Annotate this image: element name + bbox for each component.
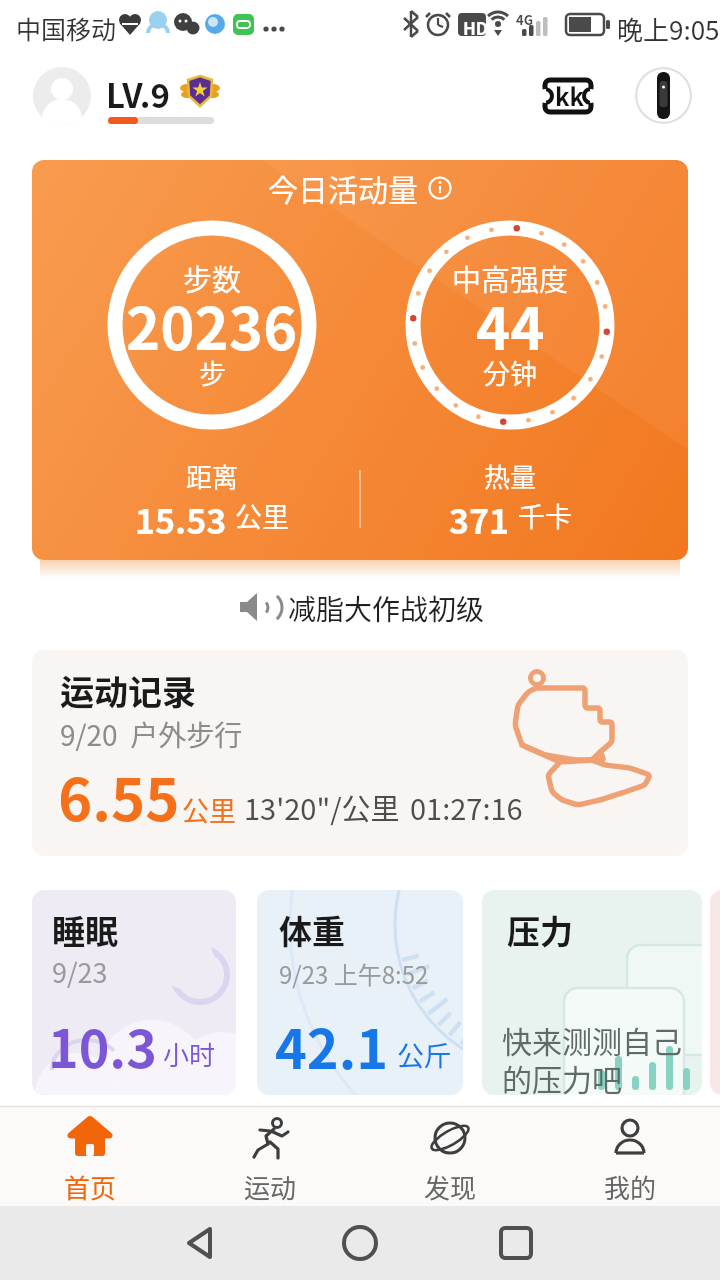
- staticText: 我的: [604, 1168, 657, 1206]
- staticText: 9/23 上午8:52: [279, 956, 429, 991]
- staticText: HD: [463, 15, 489, 40]
- staticText: kk: [555, 78, 584, 113]
- staticText: 热量: [484, 457, 537, 495]
- staticText: 小时: [163, 1035, 216, 1073]
- staticText: 的压力吧: [502, 1056, 622, 1095]
- staticText: 6.55: [58, 754, 180, 838]
- staticText: 44: [476, 283, 545, 367]
- button[interactable]: 体重: [257, 890, 463, 1095]
- staticText: 9/23: [52, 952, 108, 991]
- staticText: 01:27:16: [410, 786, 523, 828]
- staticText: 公斤: [397, 1035, 451, 1074]
- staticText: 4G: [516, 10, 533, 29]
- staticText: 发现: [424, 1168, 477, 1206]
- staticText: 压力: [507, 906, 573, 954]
- staticText: 13'20"/公里: [244, 786, 400, 828]
- staticText: 分钟: [483, 353, 537, 392]
- button[interactable]: 发现: [390, 1116, 510, 1206]
- staticText: 千卡: [518, 496, 572, 535]
- staticText: 步: [199, 353, 226, 392]
- staticText: 371: [449, 495, 510, 537]
- staticText: 快来测测自己: [502, 1018, 682, 1061]
- button[interactable]: 首页: [30, 1116, 150, 1206]
- staticText: 减脂大作战初级: [288, 588, 485, 629]
- button[interactable]: kk: [543, 76, 593, 116]
- button[interactable]: 睡眠: [32, 890, 236, 1095]
- button[interactable]: 今日活动量: [32, 160, 688, 560]
- button[interactable]: 运动记录: [32, 650, 688, 856]
- staticText: 9/20 户外步行: [60, 714, 243, 755]
- staticText: 体重: [279, 906, 345, 954]
- button[interactable]: [635, 67, 692, 124]
- button[interactable]: 压力: [482, 890, 702, 1095]
- staticText: 中国移动: [16, 10, 117, 46]
- staticText: 42.1: [275, 1006, 389, 1084]
- staticText: 10.3: [48, 1008, 157, 1083]
- button[interactable]: 减脂大作战初级: [0, 586, 720, 630]
- button[interactable]: [0, 1206, 720, 1280]
- staticText: LV.9: [106, 70, 171, 118]
- button[interactable]: 运动: [210, 1116, 330, 1206]
- staticText: 晚上9:05: [617, 10, 720, 48]
- staticText: 20236: [126, 283, 298, 367]
- staticText: 首页: [64, 1168, 117, 1206]
- button[interactable]: [33, 67, 91, 125]
- staticText: 运动记录: [60, 666, 196, 715]
- staticText: 今日活动量: [268, 166, 418, 209]
- staticText: 公里: [182, 790, 236, 829]
- staticText: 公里: [235, 496, 289, 535]
- staticText: 中高强度: [452, 257, 569, 299]
- staticText: 距离: [186, 457, 239, 495]
- button[interactable]: 我的: [570, 1116, 690, 1206]
- staticText: 15.53: [135, 495, 227, 537]
- staticText: 步数: [183, 257, 242, 299]
- staticText: 睡眠: [52, 906, 118, 954]
- staticText: 运动: [244, 1168, 297, 1206]
